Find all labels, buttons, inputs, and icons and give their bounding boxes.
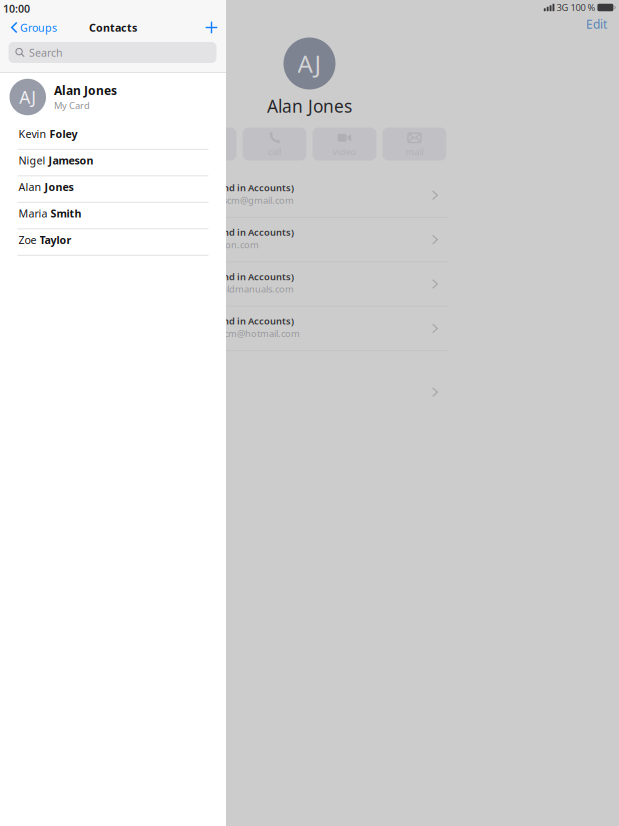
- staticText: Alan Jones: [267, 94, 352, 117]
- staticText: message: [185, 145, 223, 158]
- button[interactable]: email (Found in Accounts): [171, 262, 448, 306]
- staticText: Kevin: [18, 127, 49, 141]
- staticText: 10:00: [3, 1, 30, 16]
- button[interactable]: Edit: [586, 17, 619, 31]
- button[interactable]: email (Found in Accounts): [171, 173, 448, 217]
- staticText: hello@alanjon.com: [176, 238, 259, 251]
- staticText: Maria: [18, 206, 50, 220]
- staticText: email (Found in Accounts): [176, 181, 294, 194]
- staticText: email (Found in Accounts): [176, 270, 294, 283]
- staticText: AJ: [19, 85, 36, 108]
- staticText: alan.jones.scm@gmail.com: [176, 194, 294, 206]
- staticText: Contacts: [89, 20, 137, 35]
- button[interactable]: Notes: [171, 377, 448, 407]
- staticText: My Card: [54, 99, 90, 112]
- button[interactable]: email (Found in Accounts): [171, 307, 448, 350]
- staticText: a.jones@boldmanuals.com: [176, 283, 294, 295]
- button[interactable]: Nigel: [0, 147, 226, 174]
- staticText: Edit: [586, 16, 607, 32]
- staticText: Foley: [49, 127, 77, 141]
- button[interactable]: Kevin: [0, 121, 226, 147]
- button[interactable]: AJ: [0, 73, 226, 121]
- button[interactable]: Groups: [0, 17, 57, 37]
- button[interactable]: mail: [382, 127, 446, 160]
- button[interactable]: Alan: [0, 174, 226, 200]
- staticText: email (Found in Accounts): [176, 226, 294, 238]
- staticText: Jones: [44, 180, 73, 194]
- button[interactable]: email (Found in Accounts): [171, 218, 448, 261]
- staticText: mail: [405, 145, 423, 158]
- staticText: Alan: [18, 180, 44, 194]
- staticText: Jameson: [48, 153, 93, 167]
- button[interactable]: Maria: [0, 200, 226, 227]
- button[interactable]: video: [312, 127, 376, 160]
- button[interactable]: message: [172, 127, 236, 160]
- staticText: Zoe: [18, 233, 39, 247]
- staticText: Nigel: [18, 153, 48, 167]
- staticText: Search: [29, 45, 63, 60]
- button[interactable]: Add contact: [205, 17, 226, 37]
- staticText: AJ: [297, 48, 321, 79]
- staticText: alanjones.scm@hotmail.com: [176, 327, 300, 339]
- staticText: Alan Jones: [54, 82, 117, 98]
- staticText: call: [268, 145, 281, 158]
- staticText: Groups: [20, 20, 57, 35]
- staticText: email (Found in Accounts): [176, 315, 294, 327]
- staticText: Smith: [50, 206, 81, 220]
- staticText: video: [332, 145, 356, 158]
- staticText: 3G 100 %: [556, 1, 595, 14]
- button[interactable]: Zoe: [0, 227, 226, 253]
- staticText: Taylor: [39, 233, 71, 247]
